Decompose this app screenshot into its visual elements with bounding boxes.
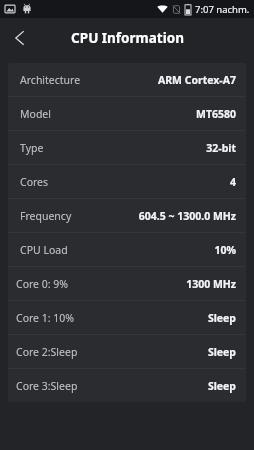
button[interactable]: Frequency [8,199,246,232]
button[interactable]: Back [0,18,40,58]
staticText: Frequency [20,209,72,223]
staticText: Sleep [207,345,236,359]
staticText: Model [20,107,51,121]
staticText: 32-bit [206,141,236,155]
staticText: CPU Load [20,243,68,257]
staticText: Sleep [207,379,236,393]
staticText: Architecture [20,73,81,87]
staticText: MT6580 [196,107,236,121]
staticText: 10% [214,243,236,257]
button[interactable]: Model [8,97,246,130]
staticText: Sleep [207,311,236,325]
staticText: CPU Information [71,29,184,47]
button[interactable]: Type [8,131,246,164]
button[interactable]: Core 3:Sleep [8,369,246,402]
staticText: 4 [229,175,236,189]
staticText: 604.5 ~ 1300.0 MHz [138,209,236,223]
button[interactable]: Core 1: 10% [8,301,246,334]
button[interactable]: Core 0: 9% [8,267,246,300]
button[interactable]: Core 2:Sleep [8,335,246,368]
staticText: Core 2:Sleep [16,345,78,359]
staticText: Core 3:Sleep [16,379,78,393]
button[interactable]: Architecture [8,63,246,96]
button[interactable]: Cores [8,165,246,198]
staticText: Type [20,141,44,155]
staticText: Cores [20,175,49,189]
button[interactable]: CPU Load [8,233,246,266]
staticText: 7:07 nachm. [195,3,250,16]
staticText: ARM Cortex-A7 [157,73,236,87]
staticText: 1300 MHz [186,277,236,291]
staticText: Core 1: 10% [16,311,75,325]
staticText: Core 0: 9% [16,277,69,291]
